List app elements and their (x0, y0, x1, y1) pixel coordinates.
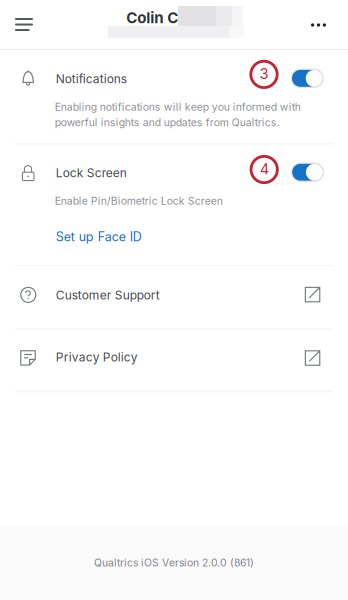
button[interactable]: Menu (2, 2, 46, 46)
button[interactable]: Privacy Policy (0, 329, 348, 392)
staticText: Notifications (56, 71, 127, 86)
staticText: Enabling notifications will keep you inf… (55, 101, 301, 129)
staticText: 4 (260, 160, 269, 178)
button[interactable]: More options (296, 3, 340, 47)
staticText: Enable Pin/Biometric Lock Screen (55, 195, 223, 207)
staticText: Lock Screen (56, 166, 127, 180)
staticText: Colin C (126, 9, 178, 27)
staticText: Qualtrics iOS Version 2.0.0 (861) (94, 556, 254, 569)
staticText: Customer Support (56, 288, 160, 302)
staticText: 3 (259, 65, 268, 82)
staticText: Set up Face ID (56, 229, 142, 244)
button[interactable]: Set up Face ID (56, 228, 148, 246)
button[interactable]: Notifications toggle (291, 69, 324, 88)
button[interactable]: Customer Support (0, 266, 348, 329)
staticText: Privacy Policy (56, 350, 138, 364)
button[interactable]: Lock screen toggle (291, 163, 324, 182)
